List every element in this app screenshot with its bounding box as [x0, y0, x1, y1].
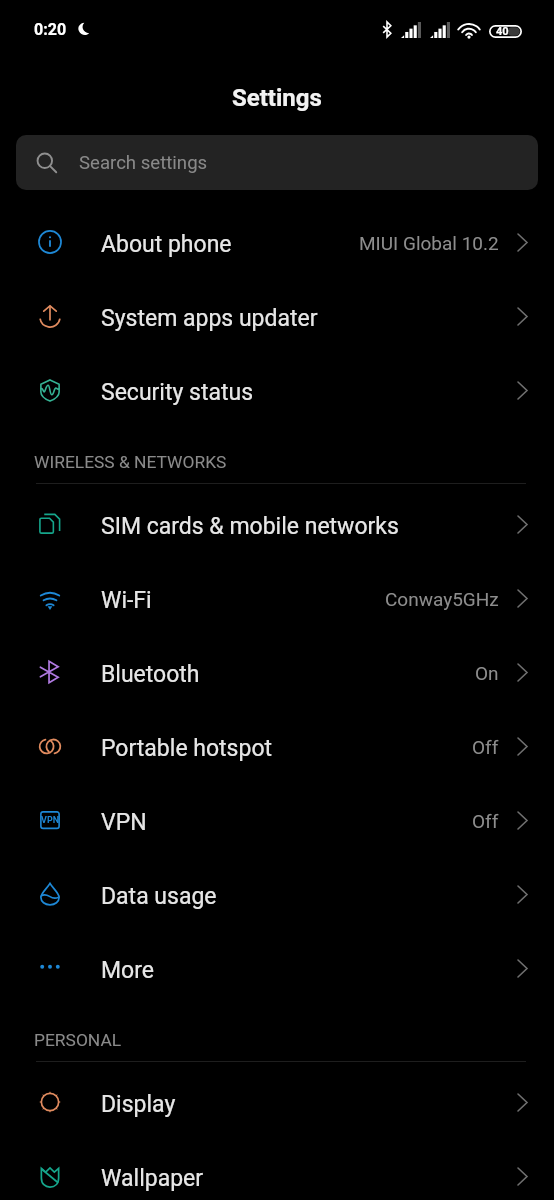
- staticText: Security status: [101, 379, 254, 406]
- button[interactable]: Display: [0, 1065, 554, 1139]
- button[interactable]: About phone: [0, 205, 554, 279]
- staticText: Settings: [232, 84, 322, 112]
- staticText: MIUI Global 10.2: [359, 232, 499, 254]
- staticText: Portable hotspot: [101, 735, 273, 762]
- staticText: 40: [496, 25, 509, 38]
- staticText: Wallpaper: [101, 1165, 204, 1192]
- button[interactable]: Wi-Fi: [0, 561, 554, 635]
- button[interactable]: SIM cards & mobile networks: [0, 487, 554, 561]
- staticText: VPN: [41, 815, 60, 826]
- staticText: 0:20: [34, 20, 67, 39]
- staticText: Search settings: [79, 152, 208, 174]
- button[interactable]: System apps updater: [0, 279, 554, 353]
- staticText: On: [475, 662, 499, 684]
- button[interactable]: Search settings: [16, 135, 538, 190]
- staticText: Data usage: [101, 883, 217, 910]
- button[interactable]: Security status: [0, 353, 554, 427]
- staticText: VPN: [101, 809, 147, 836]
- staticText: Display: [101, 1091, 176, 1118]
- staticText: More: [101, 957, 154, 984]
- staticText: Bluetooth: [101, 661, 200, 688]
- staticText: About phone: [101, 231, 232, 258]
- staticText: WIRELESS & NETWORKS: [34, 452, 227, 472]
- staticText: System apps updater: [101, 305, 318, 332]
- button[interactable]: Data usage: [0, 857, 554, 931]
- staticText: Off: [472, 810, 499, 832]
- button[interactable]: Bluetooth: [0, 635, 554, 709]
- staticText: Off: [472, 736, 499, 758]
- button[interactable]: More: [0, 931, 554, 1005]
- button[interactable]: VPN: [0, 783, 554, 857]
- staticText: Wi-Fi: [101, 587, 152, 614]
- staticText: PERSONAL: [34, 1030, 122, 1050]
- button[interactable]: Wallpaper: [0, 1139, 554, 1200]
- staticText: SIM cards & mobile networks: [101, 513, 399, 540]
- button[interactable]: Portable hotspot: [0, 709, 554, 783]
- staticText: Conway5GHz: [385, 588, 499, 610]
